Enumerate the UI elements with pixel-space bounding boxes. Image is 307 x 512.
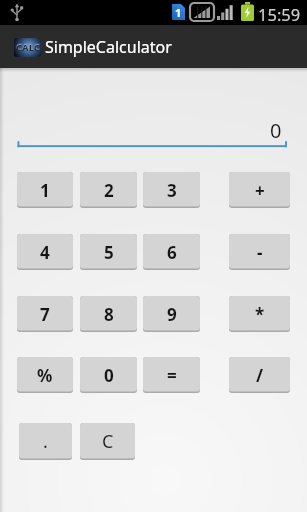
button[interactable]: 2 [80, 172, 137, 208]
button[interactable]: + [229, 172, 290, 208]
staticText: 4 [40, 241, 50, 264]
staticText: = [167, 364, 177, 387]
button[interactable]: 5 [80, 234, 137, 270]
button[interactable]: . [19, 423, 72, 460]
button[interactable]: 8 [80, 296, 137, 332]
button[interactable]: 0 [80, 357, 137, 393]
staticText: CALC [16, 41, 40, 54]
button[interactable]: 4 [17, 234, 73, 270]
button[interactable]: / [229, 357, 290, 393]
button[interactable]: C [80, 423, 135, 460]
staticText: 0 [104, 364, 114, 387]
button[interactable]: % [17, 357, 73, 393]
staticText: SimpleCalculator [45, 36, 172, 58]
staticText: 9 [167, 303, 177, 326]
button[interactable]: = [143, 357, 200, 393]
staticText: % [37, 364, 53, 387]
button[interactable]: 3 [143, 172, 200, 208]
staticText: 2 [104, 179, 114, 202]
staticText: / [256, 364, 264, 387]
staticText: 0 [270, 117, 282, 144]
staticText: - [257, 241, 263, 264]
button[interactable]: 7 [17, 296, 73, 332]
staticText: 1 [175, 5, 182, 20]
button[interactable]: 6 [143, 234, 200, 270]
staticText: * [255, 303, 265, 326]
button[interactable]: 1 [17, 172, 73, 208]
button[interactable]: * [229, 296, 290, 332]
staticText: . [43, 429, 48, 454]
staticText: 7 [40, 303, 50, 326]
staticText: 1 [40, 179, 50, 202]
staticText: 5 [104, 241, 114, 264]
staticText: + [255, 179, 265, 202]
button[interactable]: 9 [143, 296, 200, 332]
staticText: 8 [104, 303, 114, 326]
staticText: 15:59 [258, 3, 301, 25]
staticText: 6 [167, 241, 177, 264]
staticText: 3 [167, 179, 177, 202]
button[interactable]: - [229, 234, 290, 270]
staticText: C [102, 429, 114, 454]
